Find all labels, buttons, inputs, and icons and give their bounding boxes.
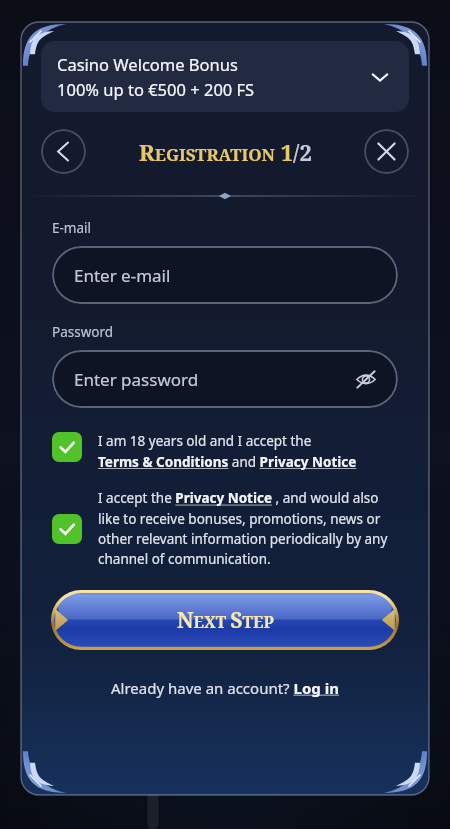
button[interactable]: Already have an account? Log in (103, 674, 347, 702)
button[interactable]: Close (364, 129, 409, 174)
other: Expand bonus details (367, 64, 393, 90)
staticText: NEXT STEP (177, 606, 274, 635)
staticText: E-mail (52, 219, 92, 237)
staticText: Password (52, 323, 114, 341)
button[interactable]: Back (41, 129, 86, 174)
button[interactable]: Checked (52, 432, 82, 462)
staticText: Already have an account? Log in (111, 678, 339, 698)
staticText: Enter password (74, 368, 354, 391)
staticText: REGISTRATION 1/2 (139, 137, 312, 167)
button[interactable]: Checked (52, 514, 82, 544)
staticText: Enter e-mail (74, 264, 378, 287)
staticText: I am 18 years old and I accept the Terms… (98, 432, 357, 471)
button[interactable]: Enter e-mail (52, 246, 398, 304)
staticText: Casino Welcome Bonus (57, 53, 238, 75)
button[interactable]: Checked (52, 432, 398, 471)
button[interactable]: Checked (52, 489, 398, 568)
button[interactable]: Show password (354, 367, 378, 391)
button[interactable]: Enter password (52, 350, 398, 408)
button[interactable]: Casino Welcome Bonus (41, 41, 409, 112)
button[interactable]: NEXT STEP (51, 590, 399, 650)
staticText: I accept the Privacy Notice , and would … (98, 489, 398, 568)
staticText: 100% up to €500 + 200 FS (57, 78, 255, 100)
